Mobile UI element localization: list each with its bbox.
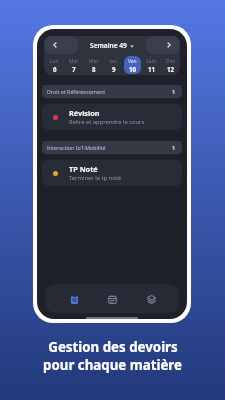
button[interactable]: Mer <box>85 56 103 74</box>
staticText: 6 <box>53 65 57 73</box>
staticText: 10 <box>129 65 137 73</box>
staticText: Dim <box>166 58 176 65</box>
staticText: Interaction IoT-Mobilité <box>47 144 172 151</box>
button[interactable]: Ven <box>124 56 141 74</box>
staticText: 8 <box>92 65 96 73</box>
button[interactable]: Dim <box>162 56 179 74</box>
button[interactable]: Semaine suivante <box>146 36 180 54</box>
button[interactable]: Devoirs <box>64 289 84 309</box>
button[interactable]: Semaine précédente <box>44 36 78 54</box>
staticText: Mar <box>69 58 79 65</box>
button[interactable]: Sam <box>143 56 160 74</box>
button[interactable]: Interaction IoT-Mobilité <box>42 141 182 154</box>
staticText: 11 <box>148 65 156 73</box>
button[interactable]: Jeu <box>105 56 122 74</box>
staticText: 12 <box>167 65 175 73</box>
button[interactable]: Droit et Référencement <box>42 85 182 98</box>
staticText: TP Noté <box>69 164 98 174</box>
staticText: Jeu <box>110 58 118 65</box>
button[interactable]: Révision <box>42 104 182 130</box>
button[interactable]: Lun <box>45 56 63 74</box>
staticText: pour chaque matière <box>43 356 182 374</box>
staticText: 7 <box>72 65 76 73</box>
staticText: Semaine 49 <box>90 41 127 50</box>
staticText: Mer <box>89 58 99 65</box>
staticText: Gestion des devoirs <box>48 338 178 356</box>
staticText: 1 <box>172 88 176 95</box>
staticText: 1 <box>172 144 176 151</box>
staticText: 9 <box>112 65 116 73</box>
staticText: Sam <box>146 58 157 65</box>
staticText: Droit et Référencement <box>47 88 172 95</box>
staticText: Ven <box>128 58 137 65</box>
button[interactable]: Matières <box>141 289 161 309</box>
staticText: Terminer le tp noté <box>69 174 122 182</box>
staticText: Lun <box>50 58 59 65</box>
button[interactable]: Mar <box>65 56 83 74</box>
staticText: Relire et apprendre le cours <box>69 118 145 126</box>
button[interactable]: TP Noté <box>42 160 182 186</box>
button[interactable]: Calendrier <box>102 289 122 309</box>
staticText: Révision <box>69 108 100 118</box>
